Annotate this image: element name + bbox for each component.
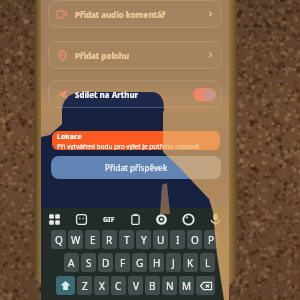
button[interactable]: GIF bbox=[102, 213, 115, 226]
button[interactable]: Stickers bbox=[75, 213, 88, 226]
button[interactable]: M bbox=[179, 276, 194, 295]
staticText: M bbox=[182, 279, 192, 293]
staticText: V bbox=[133, 279, 139, 293]
staticText: Přidat příspěvek bbox=[105, 162, 168, 173]
button[interactable]: Themes bbox=[182, 213, 195, 226]
button[interactable]: X bbox=[94, 276, 109, 295]
staticText: O bbox=[191, 233, 199, 247]
button[interactable]: S bbox=[81, 253, 96, 272]
button[interactable]: Backspace bbox=[196, 276, 215, 295]
button[interactable]: Q bbox=[51, 230, 66, 249]
staticText: Z bbox=[82, 279, 88, 293]
button[interactable]: Shift bbox=[56, 276, 75, 295]
staticText: A bbox=[68, 256, 75, 270]
staticText: L bbox=[205, 256, 211, 270]
button[interactable]: Voice input bbox=[209, 213, 222, 226]
button[interactable]: H bbox=[149, 253, 164, 272]
staticText: I bbox=[176, 233, 180, 247]
staticText: P bbox=[208, 233, 215, 247]
button[interactable]: Y bbox=[136, 230, 151, 249]
staticText: GIF bbox=[103, 215, 115, 225]
button[interactable]: T bbox=[119, 230, 134, 249]
staticText: G bbox=[136, 256, 144, 270]
staticText: F bbox=[120, 256, 126, 270]
button[interactable]: R bbox=[102, 230, 117, 249]
staticText: E bbox=[90, 233, 96, 247]
button[interactable]: J bbox=[166, 253, 181, 272]
button[interactable]: Settings bbox=[155, 213, 168, 226]
button[interactable]: K bbox=[183, 253, 198, 272]
button[interactable]: Lokace bbox=[52, 131, 220, 150]
button[interactable]: A bbox=[64, 253, 79, 272]
button[interactable]: L bbox=[200, 253, 215, 272]
button[interactable]: Z bbox=[77, 276, 92, 295]
staticText: H bbox=[153, 256, 161, 270]
staticText: X bbox=[99, 279, 105, 293]
button[interactable]: I bbox=[170, 230, 185, 249]
staticText: C bbox=[115, 279, 122, 293]
button[interactable]: Share toggle bbox=[193, 88, 216, 101]
staticText: Sdílet na Arthur bbox=[75, 89, 139, 100]
staticText: Přidat polohu bbox=[75, 50, 130, 61]
button[interactable]: D bbox=[98, 253, 113, 272]
staticText: W bbox=[71, 233, 81, 247]
button[interactable]: U bbox=[153, 230, 168, 249]
staticText: Při vytváření bodu pro výlet je potřeba … bbox=[57, 142, 220, 150]
button[interactable]: G bbox=[132, 253, 147, 272]
staticText: S bbox=[86, 256, 92, 270]
staticText: Lokace bbox=[57, 132, 82, 142]
button[interactable]: B bbox=[145, 276, 160, 295]
button[interactable]: E bbox=[85, 230, 100, 249]
staticText: B bbox=[149, 279, 156, 293]
staticText: N bbox=[166, 279, 174, 293]
staticText: K bbox=[187, 256, 194, 270]
button[interactable]: Přidat příspěvek bbox=[51, 156, 221, 179]
staticText: D bbox=[102, 256, 110, 270]
button[interactable]: Clipboard bbox=[129, 213, 142, 226]
button[interactable]: Přidat polohu bbox=[48, 41, 222, 69]
staticText: J bbox=[172, 256, 175, 270]
button[interactable]: W bbox=[68, 230, 83, 249]
button[interactable]: Přidat audio komentář bbox=[48, 0, 222, 28]
button[interactable]: O bbox=[187, 230, 202, 249]
button[interactable]: V bbox=[128, 276, 143, 295]
button[interactable]: C bbox=[111, 276, 126, 295]
button[interactable]: N bbox=[162, 276, 177, 295]
staticText: Y bbox=[141, 233, 147, 247]
staticText: Q bbox=[55, 233, 63, 247]
button[interactable]: Keyboard layouts bbox=[48, 213, 61, 226]
staticText: U bbox=[157, 233, 165, 247]
button[interactable]: P bbox=[204, 230, 219, 249]
staticText: T bbox=[124, 233, 130, 247]
button[interactable]: Sdílet na Arthur bbox=[48, 80, 222, 108]
button[interactable]: F bbox=[115, 253, 130, 272]
staticText: R bbox=[106, 233, 113, 247]
staticText: Přidat audio komentář bbox=[75, 9, 166, 20]
